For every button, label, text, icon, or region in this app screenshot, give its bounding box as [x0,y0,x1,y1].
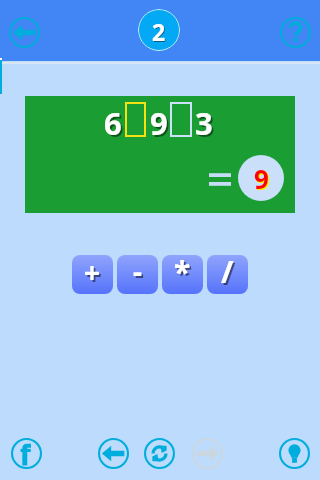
staticText: / [221,255,234,290]
button[interactable]: Previous [98,438,129,469]
staticText: 9 [255,162,270,197]
staticText: 2 [152,16,166,47]
staticText: / [223,255,236,292]
button[interactable]: Refresh [144,438,175,469]
staticText: - [135,255,144,292]
button[interactable]: Help [280,17,311,48]
button[interactable]: 9 [238,155,284,201]
button[interactable]: Share on Facebook [11,438,42,469]
staticText: 6 [106,104,124,146]
staticText: 3 [197,104,215,146]
button[interactable] [170,102,192,137]
staticText: 9 [254,161,269,196]
staticText: - [133,255,142,290]
button[interactable] [125,102,146,137]
staticText: * [176,255,193,292]
staticText: 3 [195,102,213,144]
button[interactable]: Back [9,17,40,48]
button[interactable]: / [207,255,248,294]
staticText: + [84,255,101,291]
button[interactable]: - [117,255,158,294]
button[interactable]: Hint [279,438,310,469]
button[interactable]: 2 [138,9,180,51]
staticText: 9 [152,104,170,146]
button[interactable]: * [162,255,203,294]
button[interactable]: Next [192,438,223,469]
staticText: 9 [150,102,168,144]
staticText: + [86,255,103,293]
button[interactable]: + [72,255,113,294]
staticText: 6 [104,102,122,144]
staticText: * [174,255,191,290]
staticText: 2 [153,17,167,48]
